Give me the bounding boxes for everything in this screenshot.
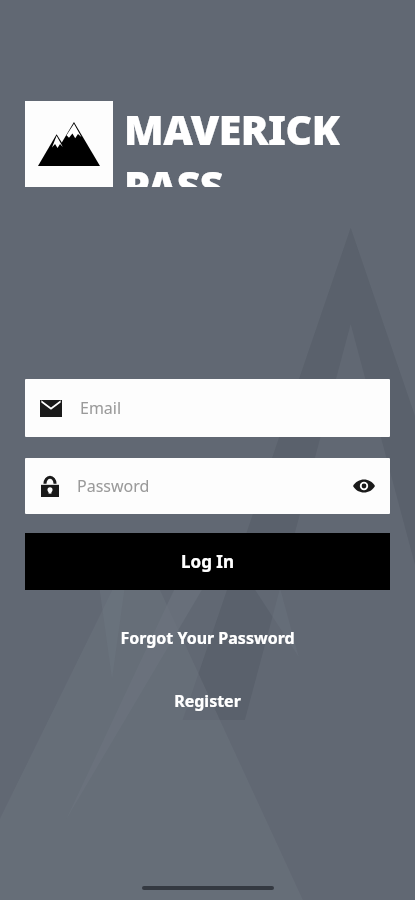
staticText: MAVERICK (124, 101, 340, 157)
staticText: Password (77, 475, 150, 497)
staticText: Email (80, 397, 122, 419)
button[interactable]: Email (25, 379, 390, 437)
button[interactable]: Register (0, 690, 415, 712)
button[interactable]: Show password (342, 464, 386, 508)
button[interactable]: Forgot Your Password (0, 627, 415, 649)
button[interactable]: Password (25, 458, 390, 514)
staticText: PASS (124, 157, 223, 187)
button[interactable]: Log In (25, 533, 390, 590)
staticText: Register (174, 690, 241, 712)
staticText: Log In (181, 550, 234, 573)
staticText: Forgot Your Password (120, 627, 295, 649)
